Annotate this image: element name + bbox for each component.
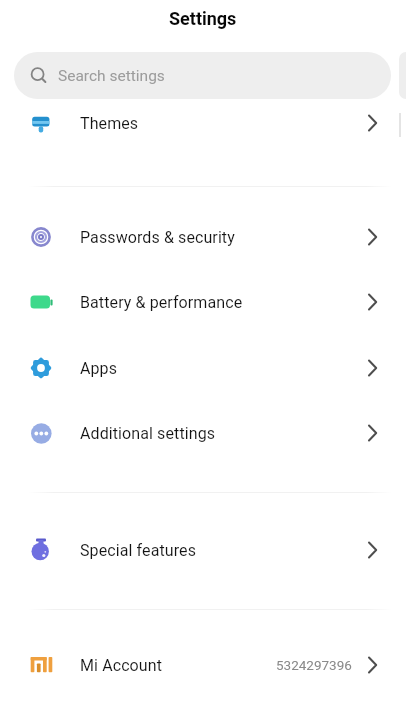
- staticText: 5324297396: [276, 657, 352, 673]
- staticText: Additional settings: [80, 424, 216, 443]
- button[interactable]: Themes: [0, 90, 406, 156]
- button[interactable]: Passwords & security: [0, 204, 406, 270]
- staticText: Apps: [80, 359, 118, 378]
- staticText: Passwords & security: [80, 228, 235, 247]
- staticText: Special features: [80, 541, 197, 560]
- button[interactable]: Search settings: [14, 52, 391, 99]
- staticText: Themes: [80, 114, 139, 133]
- button[interactable]: Apps: [0, 335, 406, 401]
- staticText: Mi Account: [80, 656, 163, 675]
- staticText: Search settings: [58, 67, 165, 85]
- button[interactable]: Mi Account: [0, 632, 406, 698]
- button[interactable]: Special features: [0, 517, 406, 583]
- button[interactable]: Battery & performance: [0, 269, 406, 335]
- button[interactable]: Additional settings: [0, 400, 406, 466]
- staticText: Settings: [169, 8, 237, 29]
- staticText: Battery & performance: [80, 293, 243, 312]
